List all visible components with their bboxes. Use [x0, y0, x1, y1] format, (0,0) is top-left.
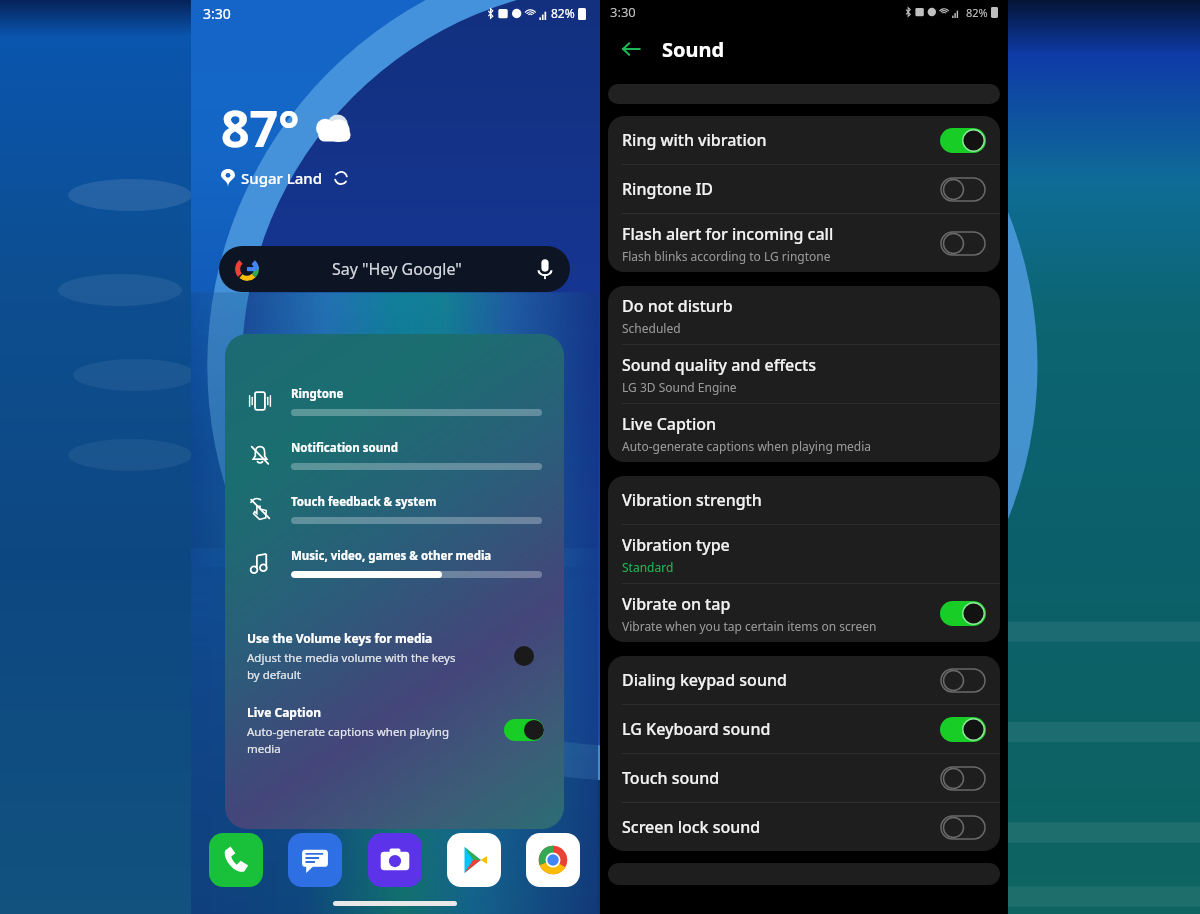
staticText: Notification sound: [291, 440, 398, 456]
button[interactable]: [940, 815, 986, 840]
staticText: Auto-generate captions when playing medi…: [247, 724, 449, 756]
staticText: Standard: [622, 559, 674, 575]
button[interactable]: [940, 601, 986, 626]
staticText: Sound: [662, 36, 725, 63]
staticText: Do not disturb: [622, 295, 733, 317]
button[interactable]: Vibration strength: [608, 476, 1000, 524]
button[interactable]: Touch feedback & system: [225, 482, 564, 536]
button[interactable]: Dialing keypad sound: [608, 656, 1000, 704]
button[interactable]: [940, 231, 986, 256]
staticText: Say "Hey Google": [332, 258, 462, 280]
staticText: Vibration strength: [622, 489, 762, 511]
staticText: Flash blinks according to LG ringtone: [622, 248, 831, 264]
button[interactable]: Notification sound: [225, 428, 564, 482]
staticText: Live Caption: [247, 704, 322, 720]
staticText: Dialing keypad sound: [622, 669, 787, 691]
button[interactable]: [940, 668, 986, 693]
staticText: Flash alert for incoming call: [622, 223, 834, 245]
staticText: Ringtone: [291, 386, 344, 402]
staticText: Sound quality and effects: [622, 354, 817, 376]
staticText: Vibrate when you tap certain items on sc…: [622, 618, 877, 634]
button[interactable]: [940, 766, 986, 791]
staticText: Screen lock sound: [622, 816, 761, 838]
button[interactable]: Messages: [288, 833, 342, 887]
staticText: Adjust the media volume with the keys by…: [247, 650, 456, 682]
button[interactable]: Music, video, games & other media: [225, 536, 564, 590]
button[interactable]: Say "Hey Google": [219, 246, 570, 292]
button[interactable]: Phone: [209, 833, 263, 887]
staticText: Vibration type: [622, 534, 730, 556]
staticText: 3:30: [610, 3, 636, 21]
staticText: Sugar Land: [241, 168, 323, 188]
staticText: Live Caption: [622, 413, 717, 435]
button[interactable]: Screen lock sound: [608, 803, 1000, 851]
button[interactable]: Back: [614, 32, 648, 66]
button[interactable]: Camera: [368, 833, 422, 887]
button[interactable]: [940, 177, 986, 202]
staticText: Ringtone ID: [622, 178, 714, 200]
staticText: 87°: [221, 94, 300, 162]
staticText: Touch feedback & system: [291, 494, 437, 510]
button[interactable]: Ring with vibration: [608, 116, 1000, 164]
staticText: 3:30: [203, 4, 231, 23]
button[interactable]: Use the Volume keys for media: [225, 630, 564, 682]
button[interactable]: Do not disturb: [608, 286, 1000, 344]
button[interactable]: Live Caption: [608, 404, 1000, 462]
button[interactable]: Live Caption: [225, 704, 564, 756]
staticText: 82%: [551, 5, 575, 21]
button[interactable]: Chrome: [526, 833, 580, 887]
button[interactable]: Vibration type: [608, 525, 1000, 583]
button[interactable]: Vibrate on tap: [608, 584, 1000, 642]
button[interactable]: [940, 717, 986, 742]
staticText: Touch sound: [622, 767, 720, 789]
button[interactable]: LG Keyboard sound: [608, 705, 1000, 753]
staticText: Ring with vibration: [622, 129, 767, 151]
staticText: LG Keyboard sound: [622, 718, 771, 740]
staticText: Scheduled: [622, 320, 681, 336]
other: Voice search: [536, 258, 554, 280]
button[interactable]: Ringtone ID: [608, 165, 1000, 213]
button[interactable]: Sound quality and effects: [608, 345, 1000, 403]
staticText: 82%: [966, 5, 988, 20]
button[interactable]: Ringtone: [225, 374, 564, 428]
button[interactable]: Play Store: [447, 833, 501, 887]
staticText: LG 3D Sound Engine: [622, 379, 737, 395]
staticText: Use the Volume keys for media: [247, 630, 433, 646]
staticText: Music, video, games & other media: [291, 548, 492, 564]
button[interactable]: [940, 128, 986, 153]
staticText: Auto-generate captions when playing medi…: [622, 438, 872, 454]
staticText: Vibrate on tap: [622, 593, 731, 615]
button[interactable]: Flash alert for incoming call: [608, 214, 1000, 272]
button[interactable]: Touch sound: [608, 754, 1000, 802]
